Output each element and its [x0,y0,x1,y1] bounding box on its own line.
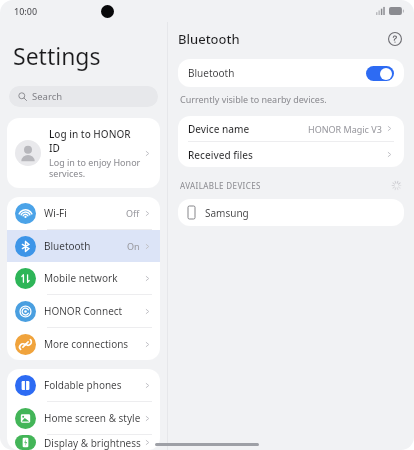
button[interactable]: HONOR Connect [7,295,160,327]
button[interactable]: Help [386,30,404,48]
staticText: AVAILABLE DEVICES [180,180,391,191]
staticText: Mobile network [44,271,143,285]
staticText: Display & brightness [44,436,143,450]
staticText: Off [126,207,140,219]
staticText: Search [32,90,63,103]
button[interactable]: Wi-Fi [7,197,160,229]
button[interactable]: Display & brightness [7,435,160,450]
staticText: Received files [188,148,385,162]
staticText: Wi-Fi [44,206,126,220]
staticText: Samsung [205,206,249,220]
staticText: More connections [44,337,143,351]
button[interactable]: Search [9,86,158,107]
button[interactable]: Samsung [178,199,404,226]
button[interactable]: Log in to HONOR ID [7,118,160,188]
staticText: Home screen & style [44,411,143,425]
staticText: Foldable phones [44,378,143,392]
staticText: Bluetooth [188,66,366,80]
staticText: 10:00 [14,5,38,17]
button[interactable]: Bluetooth toggle, on [366,66,394,81]
button[interactable]: Bluetooth [7,230,160,262]
button[interactable]: Foldable phones [7,369,160,401]
staticText: Bluetooth [44,239,127,253]
button[interactable]: Received files [178,142,404,167]
staticText: Device name [188,122,308,136]
staticText: HONOR Connect [44,304,143,318]
staticText: Log in to enjoy Honor services. [49,156,141,179]
button[interactable]: Device name [178,116,404,141]
staticText: Log in to HONOR ID [49,127,143,155]
staticText: Settings [13,40,101,71]
staticText: HONOR Magic V3 [308,123,382,135]
staticText: Bluetooth [178,30,386,48]
button[interactable]: More connections [7,328,160,360]
staticText: Currently visible to nearby devices. [180,93,327,105]
button[interactable]: Mobile network [7,262,160,294]
button[interactable]: Bluetooth [178,59,404,87]
button[interactable]: Home screen & style [7,402,160,434]
staticText: On [127,240,140,252]
